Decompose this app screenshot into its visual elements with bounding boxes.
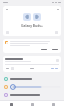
staticText: Galaxy Buds+	[3, 23, 61, 28]
button[interactable]	[0, 75, 64, 83]
button[interactable]: Back	[5, 8, 8, 11]
button[interactable]: More options	[56, 8, 59, 11]
button[interactable]: Tab 3	[43, 101, 64, 108]
button[interactable]	[0, 91, 64, 99]
button[interactable]: Toggle	[3, 56, 61, 64]
button[interactable]: Tab 2	[22, 101, 43, 108]
button[interactable]: Tab 1	[0, 101, 22, 108]
button[interactable]	[51, 48, 59, 51]
button[interactable]	[3, 39, 61, 53]
button[interactable]	[0, 83, 64, 91]
button[interactable]	[40, 48, 48, 51]
